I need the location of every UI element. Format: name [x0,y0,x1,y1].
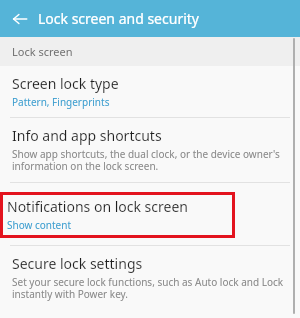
button[interactable]: Info and app shortcuts [0,118,300,182]
staticText: Set your secure lock functions, such as … [12,275,284,301]
staticText: Lock screen [12,44,73,59]
staticText: Notifications on lock screen [7,197,188,216]
button[interactable]: Secure lock settings [0,246,300,310]
staticText: Secure lock settings [12,254,143,273]
button[interactable]: Back [7,6,33,32]
button[interactable]: Screen lock type [0,66,300,117]
staticText: Info and app shortcuts [12,126,162,145]
staticText: Pattern, Fingerprints [12,95,110,109]
staticText: Lock screen and security [38,9,199,28]
staticText: Screen lock type [12,74,119,93]
button[interactable]: Notifications on lock screen [0,192,235,238]
staticText: Show content [7,218,72,232]
staticText: Show app shortcuts, the dual clock, or t… [12,147,284,173]
